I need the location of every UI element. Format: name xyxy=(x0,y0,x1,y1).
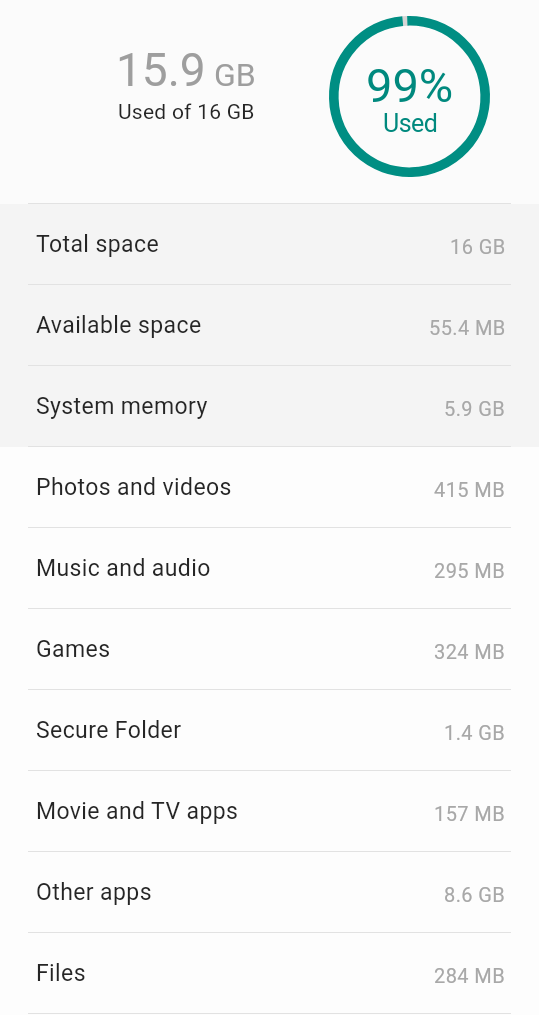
staticText: 295 MB xyxy=(434,559,506,582)
staticText: 15.9 xyxy=(116,43,206,97)
button[interactable]: Other apps xyxy=(0,852,539,933)
staticText: Available space xyxy=(36,312,202,339)
button[interactable]: Available space xyxy=(0,285,539,366)
staticText: Used xyxy=(383,109,438,138)
staticText: Music and audio xyxy=(36,555,211,582)
staticText: 99% xyxy=(366,58,454,113)
button[interactable]: System memory xyxy=(0,366,539,447)
button[interactable]: Music and audio xyxy=(0,528,539,609)
button[interactable]: Games xyxy=(0,609,539,690)
staticText: 1.4 GB xyxy=(444,721,506,744)
staticText: 16 GB xyxy=(450,235,506,258)
staticText: Total space xyxy=(36,231,159,258)
staticText: System memory xyxy=(36,393,208,420)
staticText: Photos and videos xyxy=(36,474,232,501)
staticText: GB xyxy=(206,56,256,94)
staticText: Games xyxy=(36,636,111,663)
staticText: Secure Folder xyxy=(36,717,182,744)
staticText: Other apps xyxy=(36,879,152,906)
staticText: 55.4 MB xyxy=(429,316,506,339)
staticText: Movie and TV apps xyxy=(36,798,239,825)
staticText: Used of 16 GB xyxy=(118,100,255,125)
staticText: 284 MB xyxy=(434,964,506,987)
staticText: 324 MB xyxy=(434,640,506,663)
button[interactable]: Total space xyxy=(0,204,539,285)
staticText: 8.6 GB xyxy=(444,883,506,906)
button[interactable]: Photos and videos xyxy=(0,447,539,528)
staticText: 157 MB xyxy=(434,802,506,825)
staticText: 5.9 GB xyxy=(444,397,506,420)
button[interactable]: Movie and TV apps xyxy=(0,771,539,852)
staticText: 415 MB xyxy=(434,478,506,501)
staticText: Files xyxy=(36,960,86,987)
button[interactable]: Files xyxy=(0,933,539,1014)
button[interactable]: Secure Folder xyxy=(0,690,539,771)
